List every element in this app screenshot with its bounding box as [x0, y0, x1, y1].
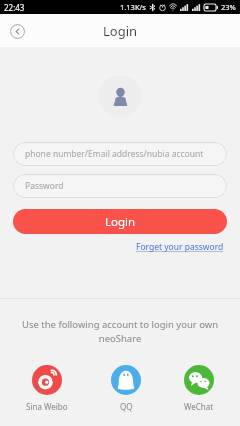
staticText: QQ: [120, 401, 133, 412]
button[interactable]: Back: [7, 21, 27, 41]
staticText: 23%: [221, 2, 236, 12]
staticText: 1.13K/s: [120, 2, 146, 12]
staticText: WeChat: [184, 401, 214, 412]
staticText: Use the following account to login your …: [18, 318, 222, 345]
button[interactable]: WeChat: [180, 365, 218, 412]
staticText: Password: [25, 180, 64, 192]
staticText: Login: [103, 22, 138, 40]
button[interactable]: Login: [13, 209, 227, 234]
button[interactable]: Sina Weibo: [22, 365, 72, 412]
button[interactable]: Forget your password: [134, 239, 226, 255]
button[interactable]: QQ: [107, 365, 145, 412]
staticText: Login: [105, 214, 136, 230]
staticText: Sina Weibo: [26, 401, 68, 412]
staticText: phone number/Email address/nubia account: [25, 148, 204, 160]
button[interactable]: Password: [13, 174, 227, 198]
staticText: 22:43: [4, 2, 25, 13]
button[interactable]: phone number/Email address/nubia account: [13, 142, 227, 166]
staticText: Forget your password: [136, 241, 224, 253]
button[interactable]: Avatar: [99, 75, 141, 117]
